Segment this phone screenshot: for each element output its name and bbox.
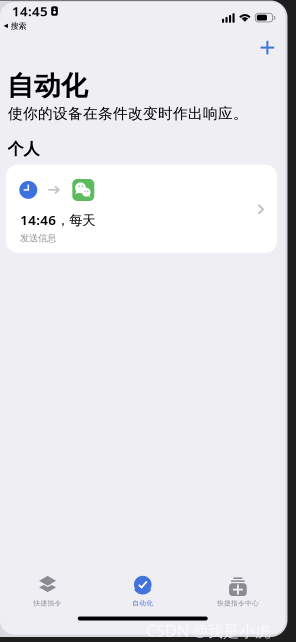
staticText: 14:45	[12, 2, 48, 20]
staticText: 个人	[7, 139, 39, 159]
button[interactable]: 新建自动化	[251, 31, 284, 64]
staticText: 自动化	[7, 69, 88, 102]
button[interactable]: 自动化	[95, 575, 190, 609]
button[interactable]: 搜索	[0, 21, 70, 31]
staticText: 搜索	[11, 21, 27, 31]
button[interactable]: 14:46，每天	[6, 164, 277, 253]
button[interactable]: 快捷指令中心	[190, 575, 285, 609]
staticText: 快捷指令	[34, 599, 62, 607]
staticText: 快捷指令中心	[217, 599, 259, 607]
button[interactable]: 快捷指令	[0, 575, 95, 609]
staticText: 发送信息	[20, 232, 56, 244]
staticText: 自动化	[132, 599, 153, 607]
staticText: CSDN @我是小虎	[146, 620, 271, 641]
staticText: 使你的设备在条件改变时作出响应。	[8, 104, 248, 122]
staticText: 14:46，每天	[20, 211, 95, 229]
